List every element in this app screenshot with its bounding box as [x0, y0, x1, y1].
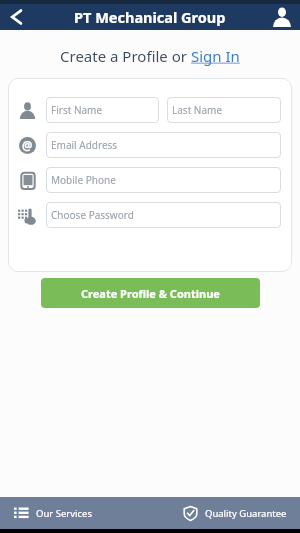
button[interactable]: Create Profile & Continue [41, 278, 260, 308]
staticText: Quality Guarantee [205, 507, 287, 520]
button[interactable]: Our Services [0, 497, 92, 529]
staticText: Mobile Phone [51, 173, 116, 187]
staticText: Create a Profile or [60, 46, 191, 66]
button[interactable] [272, 7, 292, 27]
staticText: Our Services [36, 507, 92, 520]
staticText: Last Name [172, 103, 223, 117]
staticText: Create Profile & Continue [81, 286, 220, 301]
staticText: @ [22, 138, 33, 154]
staticText: Choose Password [51, 208, 134, 222]
staticText: First Name [51, 103, 103, 117]
button[interactable]: Sign In [191, 46, 240, 66]
button[interactable] [6, 6, 28, 28]
staticText: Email Address [51, 138, 118, 152]
staticText: PT Mechanical Group [74, 7, 226, 27]
button[interactable]: Quality Guarantee [183, 497, 300, 529]
